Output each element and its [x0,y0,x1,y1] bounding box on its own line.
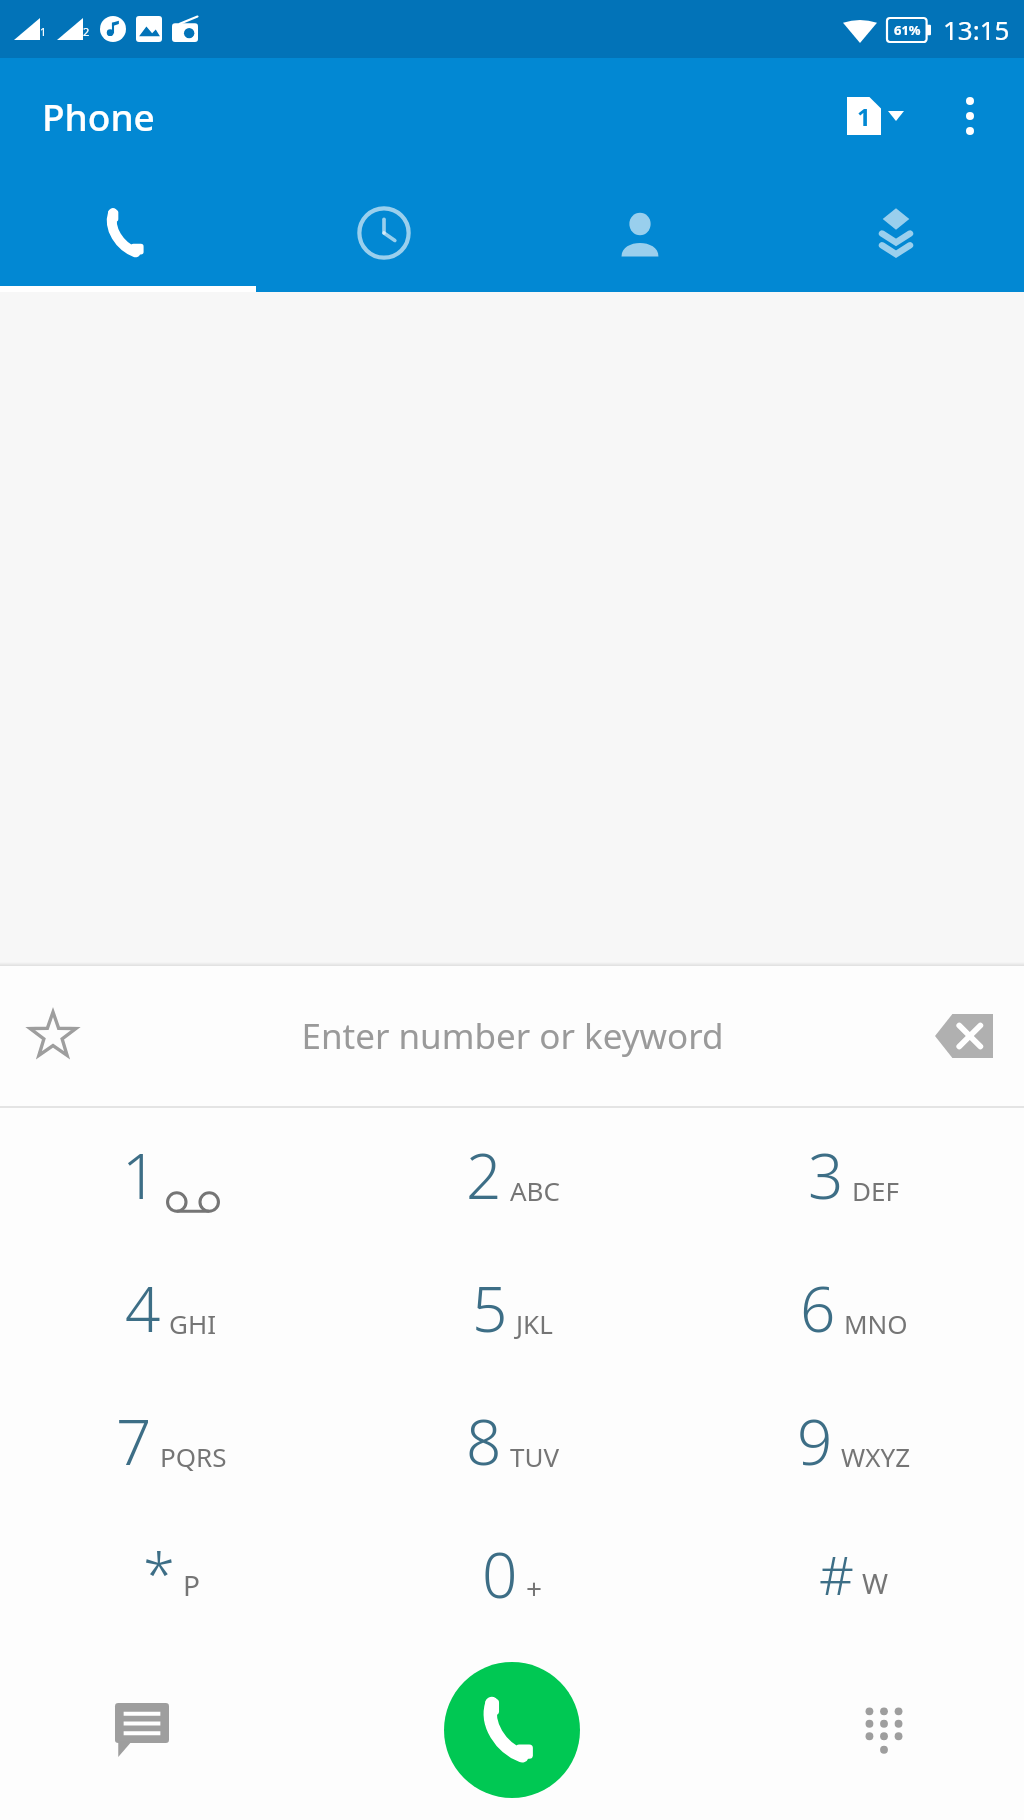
button[interactable]: Key 1 [0,1108,342,1241]
staticText: JKL [516,1306,553,1341]
button[interactable]: Dialpad tab [0,174,256,292]
button[interactable]: Recents tab [256,174,512,292]
button[interactable]: Key * [0,1507,342,1640]
staticText: WXYZ [841,1439,911,1474]
staticText: Enter number or keyword [301,1012,724,1060]
button[interactable]: Key 2 [342,1108,683,1241]
staticText: 4 [125,1266,161,1350]
staticText: Phone [42,91,155,141]
staticText: PQRS [160,1439,227,1474]
button[interactable]: Call [444,1662,580,1798]
button[interactable]: Send message [100,1688,184,1772]
staticText: 7 [116,1399,152,1483]
button[interactable]: Key 3 [683,1108,1024,1241]
button[interactable]: Groups tab [768,174,1024,292]
staticText: TUV [510,1439,560,1474]
staticText: GHI [169,1306,217,1341]
staticText: + [526,1569,543,1607]
staticText: 2 [466,1133,502,1217]
staticText: DEF [852,1173,899,1208]
button[interactable]: Hide keypad [842,1688,926,1772]
staticText: 1 [857,100,871,133]
staticText: 2 [83,24,90,39]
button[interactable]: Key 7 [0,1374,342,1507]
button[interactable]: Key 5 [342,1241,683,1374]
staticText: 8 [466,1399,502,1483]
staticText: 13:15 [943,12,1010,47]
staticText: 9 [797,1399,833,1483]
button[interactable]: Favorites [12,995,94,1077]
button[interactable]: Key 8 [342,1374,683,1507]
staticText: ABC [510,1173,560,1208]
button[interactable]: Key # [683,1507,1024,1640]
staticText: # [819,1537,854,1611]
button[interactable]: More options [940,86,1000,146]
button[interactable]: Key 4 [0,1241,342,1374]
button[interactable]: Key 0 [342,1507,683,1640]
staticText: P [183,1566,200,1604]
staticText: 61% [894,21,921,39]
staticText: 0 [482,1532,518,1616]
staticText: 6 [800,1266,836,1350]
button[interactable]: Contacts tab [512,174,768,292]
button[interactable]: Key 6 [683,1241,1024,1374]
button[interactable]: Key 9 [683,1374,1024,1507]
staticText: * [143,1534,175,1613]
staticText: 1 [40,24,47,39]
staticText: 1 [122,1133,158,1217]
button[interactable]: SIM 1 [841,89,910,143]
button[interactable]: Backspace [926,998,1002,1074]
staticText: MNO [844,1306,908,1341]
staticText: 3 [808,1133,844,1217]
staticText: W [862,1564,889,1602]
staticText: 5 [472,1266,508,1350]
